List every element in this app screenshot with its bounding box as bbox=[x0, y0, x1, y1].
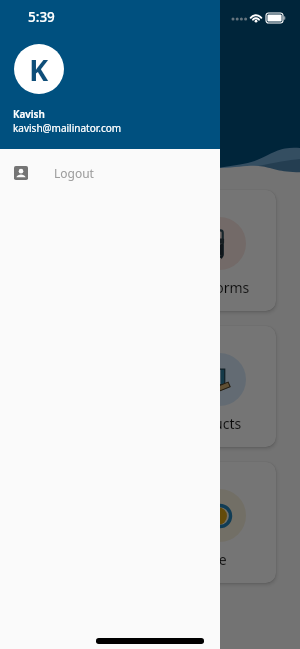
staticText: Logout bbox=[54, 165, 94, 181]
staticText: Forms bbox=[208, 278, 250, 297]
button[interactable]: Products bbox=[164, 326, 276, 447]
button[interactable]: Logout bbox=[0, 149, 220, 197]
staticText: Products bbox=[183, 414, 242, 433]
staticText: Kavish bbox=[13, 107, 45, 121]
staticText: 5:39 bbox=[28, 8, 55, 26]
other: Logout bbox=[14, 166, 28, 180]
staticText: kavish@mailinator.com bbox=[13, 121, 122, 135]
staticText: K bbox=[29, 50, 49, 89]
button[interactable]: Service bbox=[164, 462, 276, 583]
staticText: Service bbox=[180, 550, 227, 569]
button[interactable]: Forms bbox=[164, 190, 276, 311]
